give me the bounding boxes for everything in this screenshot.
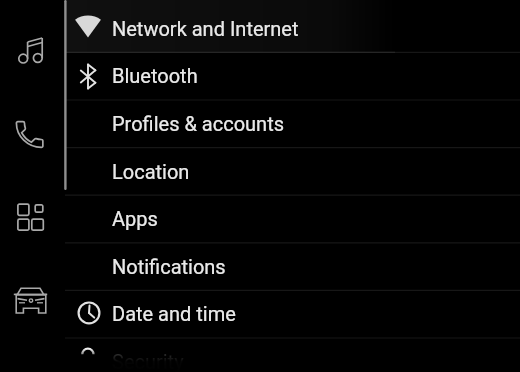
staticText: Profiles & accounts — [112, 112, 285, 135]
button[interactable]: Network and Internet — [65, 5, 520, 53]
button[interactable]: Profiles & accounts — [65, 100, 520, 148]
staticText: Network and Internet — [112, 17, 299, 40]
button[interactable]: Apps — [65, 195, 520, 243]
button[interactable]: Location — [65, 148, 520, 196]
button[interactable]: Notifications — [65, 243, 520, 291]
button[interactable]: Security — [65, 338, 520, 372]
staticText: Bluetooth — [112, 64, 198, 87]
button[interactable]: Bluetooth — [65, 52, 520, 100]
staticText: Security — [112, 350, 184, 372]
button[interactable]: Date and time — [65, 290, 520, 338]
staticText: Date and time — [112, 302, 236, 325]
staticText: Location — [112, 160, 190, 183]
button[interactable] — [7, 27, 55, 75]
button[interactable] — [7, 111, 55, 159]
staticText: Apps — [112, 207, 158, 230]
staticText: Notifications — [112, 255, 226, 278]
button[interactable] — [7, 193, 55, 241]
button[interactable] — [7, 276, 55, 324]
